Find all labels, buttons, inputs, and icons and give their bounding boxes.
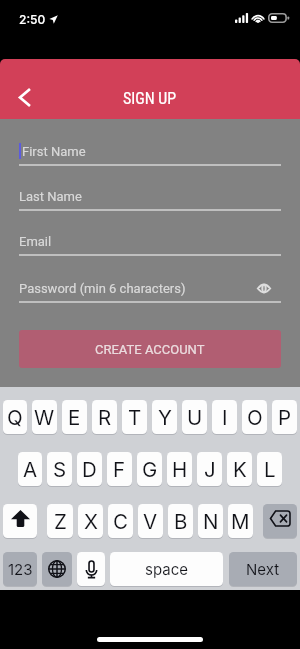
staticText: R	[98, 405, 112, 430]
button[interactable]: C	[108, 504, 133, 538]
staticText: T	[128, 405, 142, 430]
button[interactable]: Q	[3, 400, 27, 434]
button[interactable]: J	[197, 452, 222, 486]
staticText: space	[145, 560, 188, 578]
button[interactable]: M	[228, 504, 253, 538]
staticText: CREATE ACCOUNT	[95, 342, 205, 357]
staticText: Q	[7, 405, 23, 430]
button[interactable]: space	[110, 552, 223, 586]
button[interactable]: Shift	[3, 504, 37, 538]
button[interactable]: L	[257, 452, 282, 486]
staticText: J	[204, 457, 216, 482]
staticText: W	[34, 405, 55, 430]
staticText: Next	[246, 560, 280, 578]
staticText: V	[143, 509, 158, 534]
staticText: B	[174, 509, 188, 534]
button[interactable]: A	[18, 452, 42, 486]
staticText: C	[113, 509, 128, 534]
button[interactable]: Show password	[253, 277, 275, 299]
staticText: L	[264, 457, 276, 482]
button[interactable]: Back	[7, 79, 43, 115]
button[interactable]: R	[92, 400, 117, 434]
staticText: Z	[54, 509, 67, 534]
button[interactable]: F	[107, 452, 132, 486]
staticText: G	[142, 457, 158, 482]
staticText: SIGN UP	[123, 89, 177, 108]
button[interactable]: P	[272, 400, 297, 434]
button[interactable]: T	[122, 400, 147, 434]
button[interactable]: N	[198, 504, 223, 538]
button[interactable]: W	[32, 400, 57, 434]
button[interactable]: 123	[3, 552, 37, 586]
staticText: 2:50	[19, 12, 46, 27]
staticText: H	[172, 457, 188, 482]
staticText: O	[247, 405, 263, 430]
button[interactable]: H	[167, 452, 192, 486]
staticText: Email	[19, 234, 52, 249]
staticText: E	[68, 405, 81, 430]
button[interactable]: D	[77, 452, 102, 486]
staticText: U	[187, 405, 203, 430]
staticText: N	[203, 509, 219, 534]
button[interactable]: O	[242, 400, 267, 434]
button[interactable]: B	[168, 504, 193, 538]
staticText: S	[53, 457, 67, 482]
staticText: I	[222, 405, 228, 430]
button[interactable]: U	[182, 400, 207, 434]
staticText: Last Name	[19, 189, 82, 204]
staticText: First Name	[22, 144, 86, 159]
button[interactable]: G	[137, 452, 162, 486]
button[interactable]: K	[227, 452, 252, 486]
button[interactable]: Next keyboard	[42, 552, 72, 586]
button[interactable]: CREATE ACCOUNT	[19, 330, 281, 368]
button[interactable]: X	[78, 504, 103, 538]
button[interactable]: E	[62, 400, 87, 434]
button[interactable]: Dictate	[77, 552, 105, 586]
staticText: X	[84, 509, 98, 534]
button[interactable]: Backspace	[263, 504, 297, 538]
button[interactable]: I	[212, 400, 237, 434]
button[interactable]: S	[47, 452, 72, 486]
button[interactable]: Next	[229, 552, 297, 586]
staticText: K	[233, 457, 247, 482]
staticText: Y	[158, 405, 172, 430]
staticText: 123	[8, 560, 33, 578]
staticText: F	[113, 457, 126, 482]
staticText: P	[278, 405, 292, 430]
button[interactable]: Z	[47, 504, 73, 538]
staticText: Password (min 6 characters)	[19, 281, 186, 296]
staticText: A	[23, 457, 38, 482]
button[interactable]: V	[138, 504, 163, 538]
button[interactable]: Y	[152, 400, 177, 434]
staticText: M	[231, 509, 250, 534]
staticText: D	[82, 457, 97, 482]
